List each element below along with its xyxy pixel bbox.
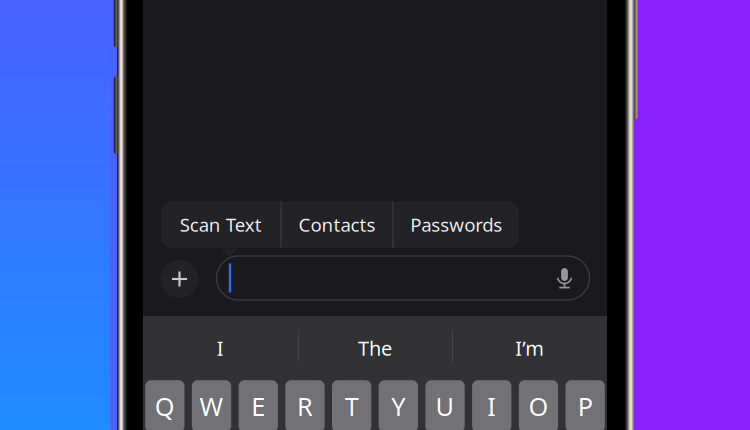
button[interactable]: U [425,380,465,430]
button[interactable]: R [285,380,325,430]
staticText: Passwords [410,212,502,237]
staticText: The [358,335,392,361]
button[interactable]: Passwords [393,201,519,248]
staticText: Q [155,389,175,423]
button[interactable]: E [239,380,278,430]
staticText: T [345,389,359,423]
button[interactable]: O [519,380,558,430]
button[interactable]: Q [145,380,184,430]
button[interactable]: Scan Text [161,201,280,248]
button[interactable]: Y [379,380,418,430]
staticText: Y [391,389,405,423]
staticText: O [528,389,548,423]
staticText: Contacts [298,212,375,237]
staticText: W [199,389,223,423]
staticText: E [251,389,265,423]
button[interactable]: P [565,380,605,430]
staticText: P [578,389,593,423]
button[interactable]: The [298,325,452,371]
staticText: Scan Text [180,212,262,237]
button[interactable]: T [332,380,371,430]
button[interactable]: I [472,380,511,430]
button[interactable]: Add attachment [160,260,198,298]
staticText: R [297,389,313,423]
staticText: I [217,335,224,361]
staticText: I [487,389,496,423]
button[interactable]: Contacts [282,201,392,248]
staticText: U [435,389,454,423]
staticText: I’m [515,335,544,361]
button[interactable]: I’m [452,325,607,371]
button[interactable]: I [143,325,298,371]
button[interactable]: W [192,380,231,430]
button[interactable] [216,256,589,300]
